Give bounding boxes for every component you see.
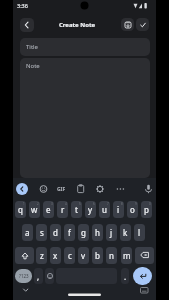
button[interactable]: o	[127, 201, 138, 218]
button[interactable]: r	[57, 201, 68, 218]
staticText: g	[81, 227, 86, 238]
button[interactable]: c	[64, 247, 75, 264]
button[interactable]: j	[106, 224, 117, 241]
staticText: s	[40, 227, 44, 238]
button[interactable]: .	[121, 268, 129, 284]
button[interactable]: b	[92, 247, 103, 264]
button[interactable]: z	[36, 247, 47, 264]
button[interactable]: ?123	[15, 269, 32, 283]
staticText: k	[123, 227, 128, 238]
staticText: w	[31, 204, 38, 215]
staticText: Note	[26, 62, 40, 70]
button[interactable]	[135, 247, 154, 264]
staticText: .	[124, 271, 127, 282]
button[interactable]: k	[120, 224, 131, 241]
button[interactable]: i	[113, 201, 124, 218]
staticText: n	[109, 250, 114, 261]
staticText: 5	[79, 202, 81, 206]
button[interactable]: q	[15, 201, 26, 218]
staticText: r	[61, 204, 65, 215]
staticText: 6	[93, 202, 95, 206]
staticText: v	[81, 250, 86, 261]
button[interactable]	[16, 183, 28, 195]
staticText: d	[53, 227, 58, 238]
staticText: 0	[149, 202, 151, 206]
button[interactable]: y	[85, 201, 96, 218]
button[interactable]	[45, 268, 54, 284]
staticText: p	[144, 204, 149, 215]
button[interactable]: v	[78, 247, 89, 264]
staticText: 7	[107, 202, 109, 206]
button[interactable]: x	[50, 247, 61, 264]
staticText: 8	[121, 202, 123, 206]
staticText: a	[25, 227, 30, 238]
button[interactable]: t	[71, 201, 82, 218]
staticText: 3	[51, 202, 53, 206]
button[interactable]: n	[106, 247, 117, 264]
staticText: Title	[26, 43, 38, 51]
staticText: j	[110, 227, 113, 238]
staticText: 4	[65, 202, 67, 206]
staticText: 1	[23, 202, 25, 206]
button[interactable]: l	[134, 224, 145, 241]
staticText: z	[40, 250, 44, 261]
staticText: x	[53, 250, 58, 261]
staticText: Create Note	[13, 21, 141, 31]
staticText: l	[138, 227, 141, 238]
button[interactable]	[136, 18, 149, 31]
staticText: ?123	[19, 273, 29, 279]
staticText: u	[102, 204, 107, 215]
staticText: q	[18, 204, 23, 215]
staticText: t	[75, 204, 78, 215]
button[interactable]: e	[43, 201, 54, 218]
staticText: h	[95, 227, 100, 238]
button[interactable]: GIF	[57, 186, 66, 193]
staticText: 2	[37, 202, 39, 206]
button[interactable]: m	[121, 247, 132, 264]
staticText: o	[130, 204, 135, 215]
staticText: f	[68, 227, 71, 238]
button[interactable]: Title	[20, 38, 150, 56]
button[interactable]: f	[64, 224, 75, 241]
button[interactable]: ,	[34, 268, 43, 284]
staticText: m	[123, 250, 131, 261]
button[interactable]: p	[141, 201, 152, 218]
staticText: i	[117, 204, 120, 215]
button[interactable]	[133, 267, 152, 285]
staticText: b	[95, 250, 100, 261]
staticText: c	[68, 250, 72, 261]
button[interactable]: w	[29, 201, 40, 218]
staticText: 9	[135, 202, 137, 206]
staticText: e	[46, 204, 51, 215]
button[interactable]	[121, 18, 134, 31]
button[interactable]	[15, 247, 34, 264]
button[interactable]: s	[36, 224, 47, 241]
button[interactable]: h	[92, 224, 103, 241]
button[interactable]: d	[50, 224, 61, 241]
button[interactable]: u	[99, 201, 110, 218]
staticText: 3:36	[17, 2, 28, 9]
button[interactable]: Note	[20, 58, 150, 178]
button[interactable]	[20, 18, 34, 32]
button[interactable]: a	[22, 224, 33, 241]
button[interactable]: g	[78, 224, 89, 241]
staticText: y	[88, 204, 93, 215]
staticText: ,	[37, 271, 40, 282]
